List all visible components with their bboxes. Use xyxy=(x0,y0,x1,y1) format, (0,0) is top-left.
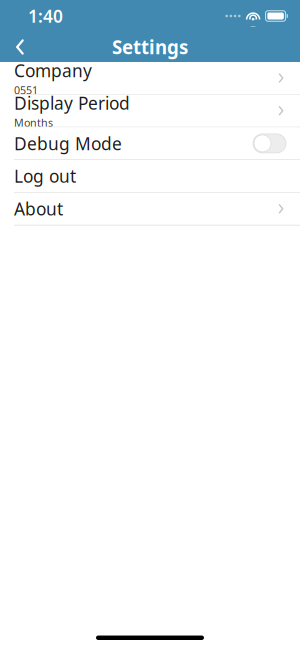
staticText: Settings xyxy=(112,35,188,59)
button[interactable]: Back xyxy=(0,32,40,62)
button[interactable]: Log out xyxy=(0,160,300,192)
button[interactable]: Display Period xyxy=(0,95,300,127)
button[interactable]: About xyxy=(0,193,300,225)
staticText: Months xyxy=(14,116,53,130)
button[interactable]: Debug Mode xyxy=(0,127,300,159)
staticText: Log out xyxy=(14,165,76,188)
staticText: Debug Mode xyxy=(14,132,122,155)
staticText: 1:40 xyxy=(28,4,63,27)
staticText: Display Period xyxy=(14,92,130,115)
staticText: Company xyxy=(14,59,92,82)
staticText: About xyxy=(14,197,63,220)
staticText: 0551 xyxy=(14,83,38,97)
button[interactable]: Company xyxy=(0,62,300,94)
